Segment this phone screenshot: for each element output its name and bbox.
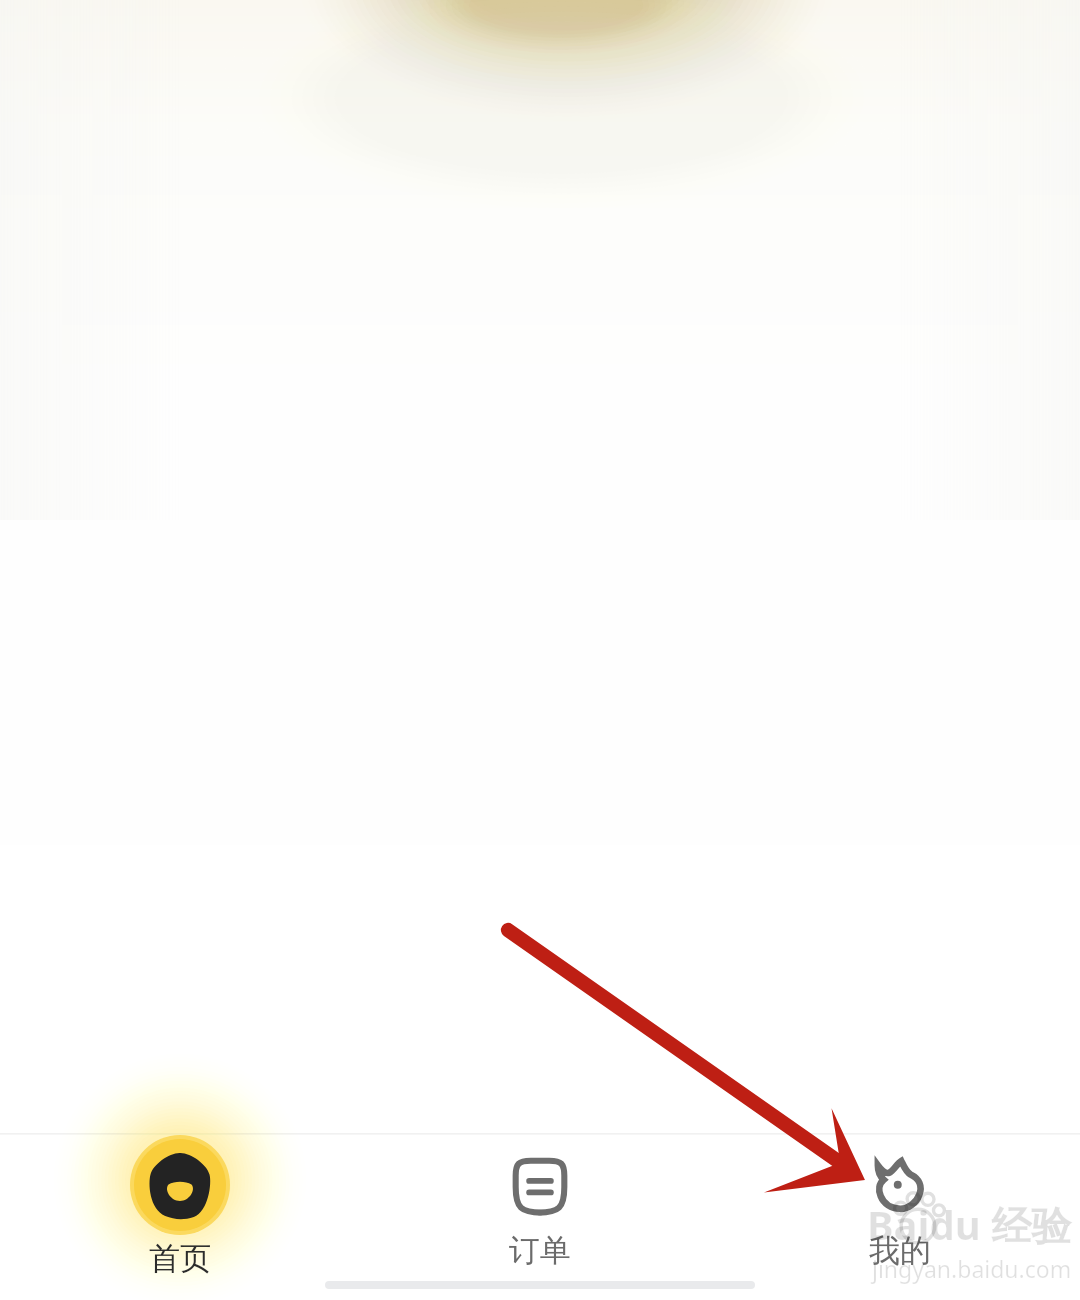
staticText: 我的: [869, 1231, 931, 1270]
staticText: Baidu 经验: [867, 1197, 1072, 1252]
other: 首页: [130, 1135, 230, 1235]
other: 我的: [868, 1155, 932, 1219]
staticText: jingyan.baidu.com: [872, 1253, 1072, 1284]
button[interactable]: 我的: [720, 1133, 1080, 1275]
button[interactable]: 订单: [360, 1133, 720, 1275]
button[interactable]: 首页: [0, 1133, 360, 1275]
staticText: 首页: [149, 1239, 211, 1275]
other: 订单: [508, 1155, 572, 1219]
staticText: 订单: [509, 1231, 571, 1270]
